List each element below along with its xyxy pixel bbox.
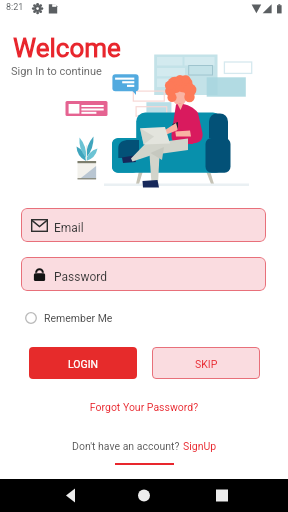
button[interactable]: SKIP <box>152 347 260 379</box>
staticText: LOGIN <box>68 358 99 370</box>
staticText: Remember Me <box>44 312 113 324</box>
staticText: Welcome <box>13 33 121 63</box>
staticText: 8:21 <box>6 2 24 13</box>
staticText: Don't have an account? <box>72 440 183 452</box>
button[interactable]: Password <box>21 257 266 291</box>
button[interactable]: Email <box>21 208 266 242</box>
button[interactable]: Forgot Your Password? <box>0 401 288 413</box>
staticText: SKIP <box>195 358 218 370</box>
staticText: Sign In to continue <box>11 65 102 78</box>
staticText: Password <box>54 270 108 284</box>
button[interactable]: LOGIN <box>29 347 137 379</box>
staticText: Email <box>54 221 84 235</box>
button[interactable]: SignUp <box>183 440 217 452</box>
button[interactable]: Remember Me <box>25 312 113 324</box>
